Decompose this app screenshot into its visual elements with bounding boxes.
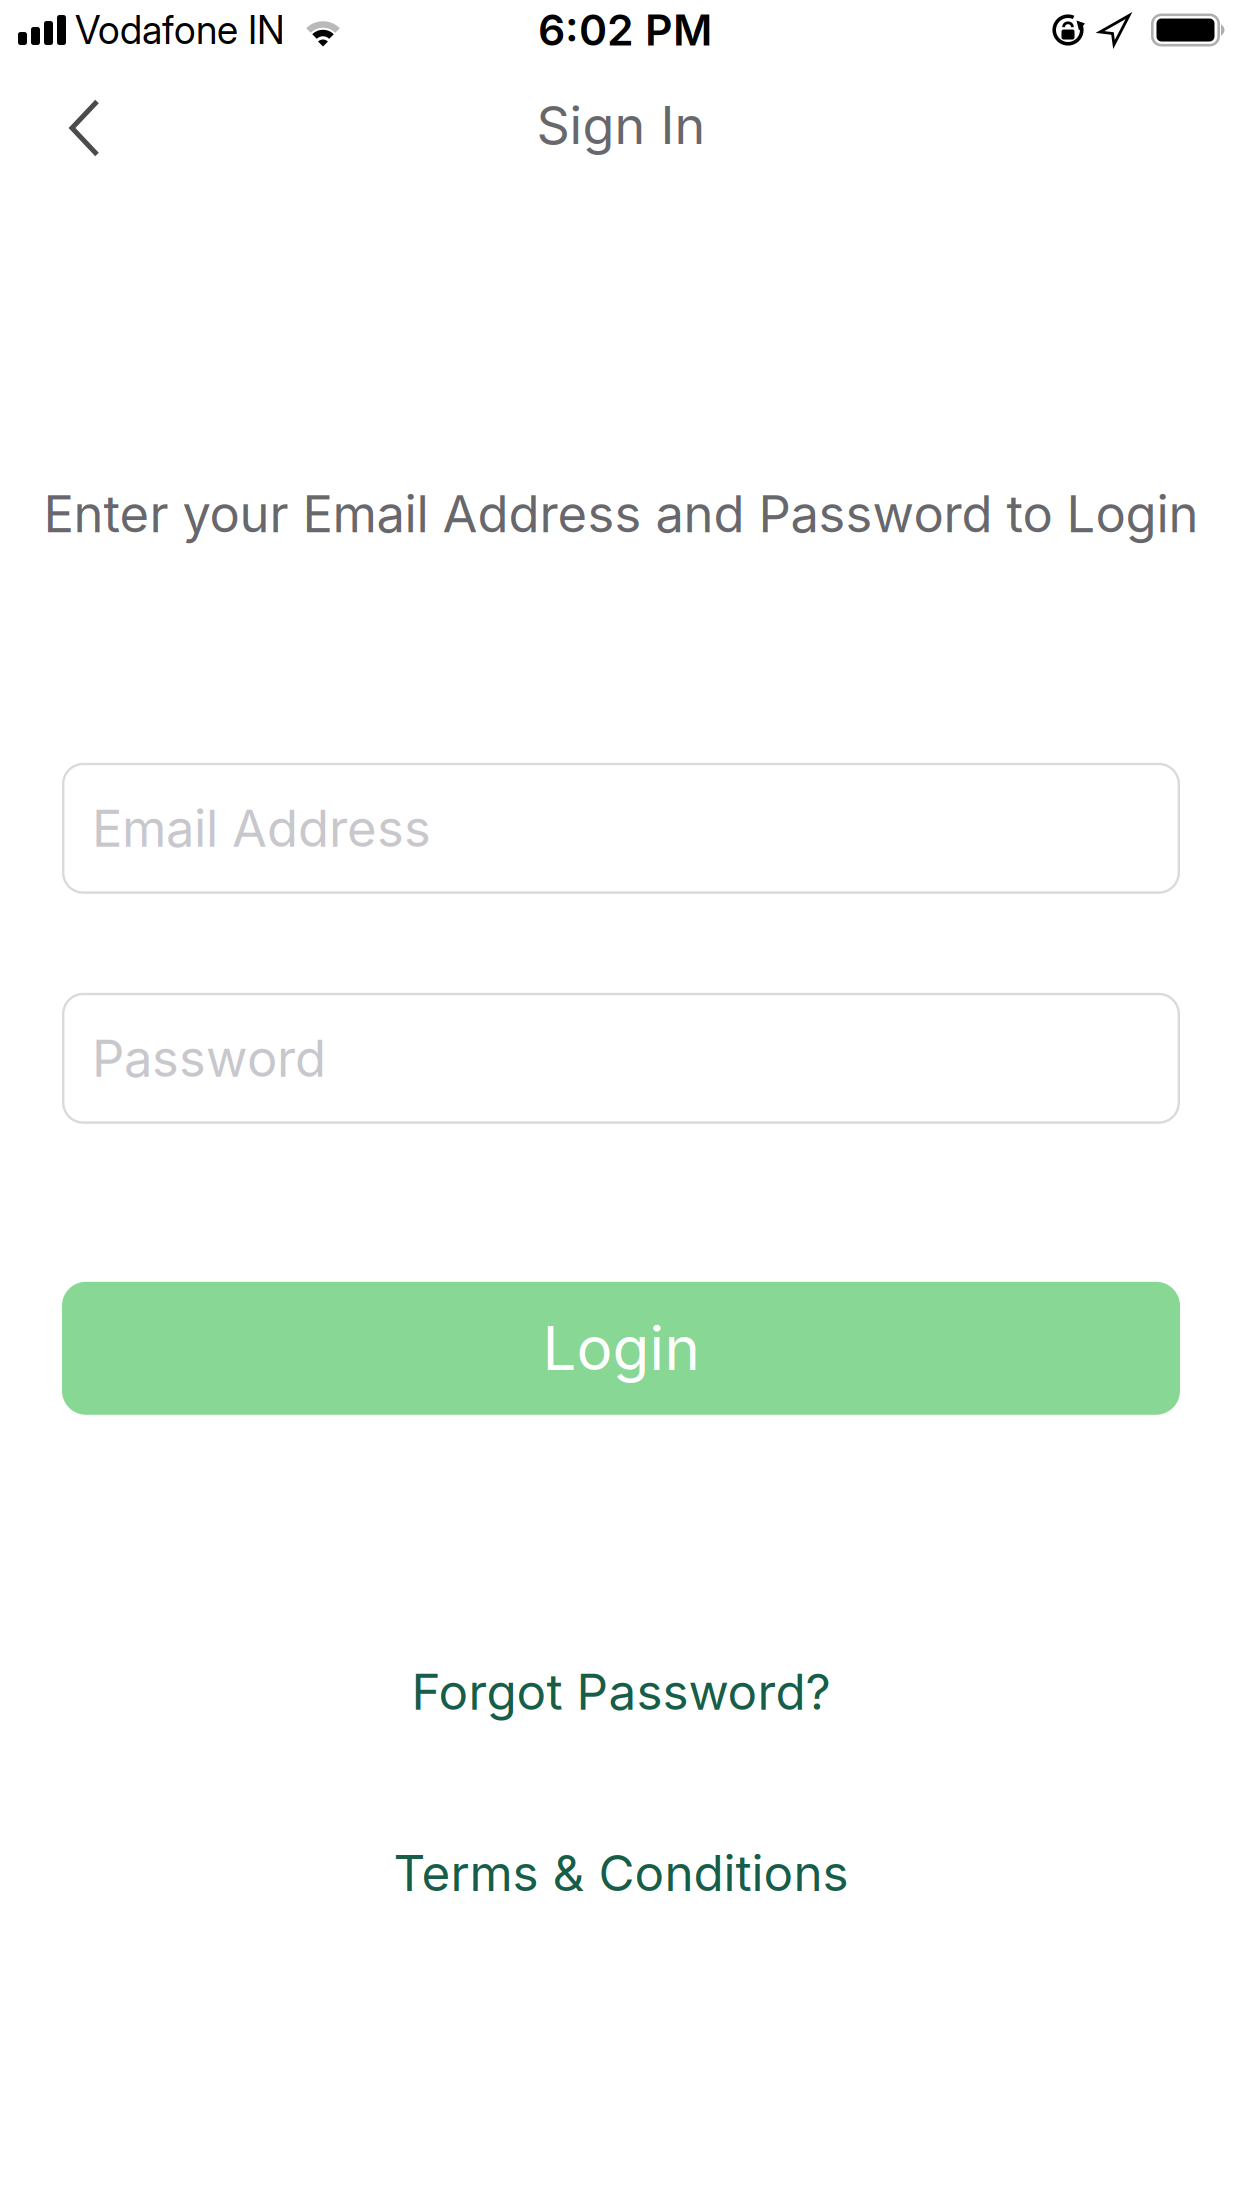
staticText: Enter your Email Address and Password to… <box>43 484 1198 544</box>
staticText: Terms & Conditions <box>393 1844 848 1902</box>
staticText: Vodafone IN <box>75 7 285 53</box>
button[interactable]: Back <box>0 60 100 190</box>
staticText: Login <box>542 1313 699 1384</box>
button[interactable]: Terms & Conditions <box>393 1844 848 1902</box>
button[interactable]: Login <box>0 1282 1242 1415</box>
button[interactable]: Password <box>0 993 1242 1124</box>
staticText: Sign In <box>536 94 705 156</box>
button[interactable]: Forgot Password? <box>411 1663 830 1721</box>
staticText: Forgot Password? <box>411 1663 830 1721</box>
staticText: Password <box>92 1028 326 1088</box>
staticText: Email Address <box>92 798 431 858</box>
button[interactable]: Email Address <box>0 763 1242 894</box>
staticText: 6:02 PM <box>538 5 712 55</box>
